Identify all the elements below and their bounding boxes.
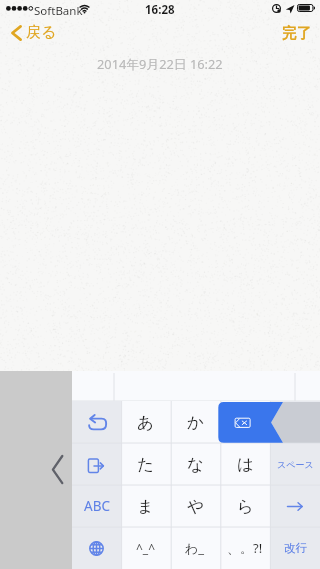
button[interactable]: Change language: [72, 527, 121, 569]
button[interactable]: Next candidate: [72, 443, 121, 485]
staticText: 戻る: [26, 23, 57, 42]
staticText: スペース: [277, 459, 314, 470]
button[interactable]: か: [170, 401, 220, 443]
button[interactable]: ABC: [72, 485, 121, 527]
button[interactable]: あ: [121, 401, 170, 443]
staticText: な: [187, 454, 204, 475]
staticText: SoftBank: [34, 3, 83, 19]
button[interactable]: ^_^: [121, 527, 170, 569]
button[interactable]: は: [220, 443, 270, 485]
other: Change language: [89, 541, 104, 556]
staticText: 16:28: [145, 2, 175, 18]
button[interactable]: 、。?!: [220, 527, 270, 569]
staticText: 完了: [282, 24, 311, 42]
staticText: か: [187, 412, 204, 433]
other: Next: [287, 502, 303, 511]
button[interactable]: [270, 401, 320, 443]
staticText: ま: [137, 496, 154, 517]
button[interactable]: [220, 401, 270, 443]
button[interactable]: スペース: [270, 443, 320, 485]
staticText: ABC: [84, 497, 110, 515]
button[interactable]: 改行: [270, 527, 320, 569]
other: Next candidate: [86, 454, 107, 475]
other: Undo: [85, 411, 108, 434]
button[interactable]: や: [170, 485, 220, 527]
button[interactable]: ま: [121, 485, 170, 527]
staticText: 改行: [284, 541, 307, 555]
button[interactable]: 戻る: [0, 23, 63, 42]
button[interactable]: た: [121, 443, 170, 485]
button[interactable]: ら: [220, 485, 270, 527]
button[interactable]: わ_: [170, 527, 220, 569]
staticText: 2014年9月22日 16:22: [97, 55, 223, 72]
staticText: は: [237, 454, 254, 475]
staticText: ら: [237, 496, 254, 517]
staticText: た: [137, 454, 154, 475]
staticText: ^_^: [136, 540, 156, 556]
button[interactable]: Next: [270, 485, 320, 527]
button[interactable]: Undo: [72, 401, 121, 443]
staticText: 、。?!: [227, 539, 263, 557]
staticText: あ: [137, 412, 154, 433]
button[interactable]: 完了: [272, 24, 320, 42]
staticText: わ_: [185, 539, 205, 557]
staticText: や: [187, 496, 204, 517]
button[interactable]: な: [170, 443, 220, 485]
